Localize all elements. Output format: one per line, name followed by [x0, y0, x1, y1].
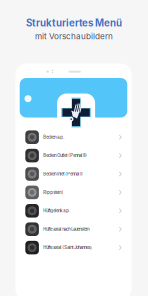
button[interactable]: Becken Outlet (Pennal II) — [20, 146, 127, 165]
staticText: Hüfte axial nach Lauenstein — [43, 227, 89, 232]
button[interactable]: Becken Inlet (Pennal I) — [20, 165, 127, 183]
staticText: Hüfte axial (Saint Johannes) — [43, 245, 92, 250]
staticText: mit Vorschaubildern — [35, 31, 113, 41]
button[interactable]: Hüfte axial (Saint Johannes) — [20, 238, 127, 257]
staticText: Becken Inlet (Pennal I) — [43, 171, 83, 176]
staticText: Becken a.p. — [43, 135, 64, 140]
button[interactable]: Hüfte axial nach Lauenstein — [20, 220, 127, 238]
button[interactable]: Rippstein I — [20, 183, 127, 202]
staticText: Rippstein I — [43, 190, 63, 195]
staticText: Strukturiertes Menü — [26, 17, 122, 29]
staticText: Hüftgelenk a.p. — [43, 208, 70, 213]
button[interactable]: Becken a.p. — [20, 128, 127, 146]
staticText: Becken Outlet (Pennal II) — [43, 153, 87, 158]
button[interactable]: Hüftgelenk a.p. — [20, 202, 127, 220]
